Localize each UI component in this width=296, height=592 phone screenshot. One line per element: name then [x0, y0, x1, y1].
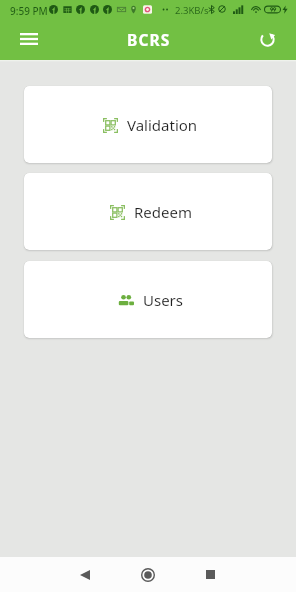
staticText: 9:59 PM — [10, 4, 48, 18]
button[interactable]: Open navigation menu — [15, 25, 43, 53]
button[interactable]: Refresh — [253, 25, 281, 53]
staticText: 2.3KB/s — [175, 4, 209, 17]
staticText: BCRS — [127, 29, 171, 50]
button[interactable]: Home — [128, 557, 168, 592]
staticText: Redeem — [134, 202, 192, 222]
button[interactable]: Recent apps — [190, 557, 230, 592]
button[interactable]: Users — [24, 261, 272, 338]
button[interactable]: Redeem — [24, 173, 272, 250]
staticText: Users — [143, 290, 183, 310]
button[interactable]: Back — [65, 557, 105, 592]
button[interactable]: Validation — [24, 86, 272, 163]
staticText: Validation — [127, 115, 198, 135]
